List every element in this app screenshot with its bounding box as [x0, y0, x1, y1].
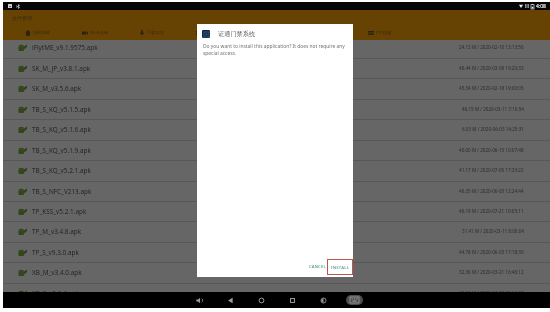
staticText: INSTALL [331, 264, 350, 270]
staticText: 41.17 M / 2020-07-05 17:33:22 [459, 167, 524, 173]
button[interactable]: INSTALL [328, 259, 353, 274]
staticText: TB_S_KQ_v5.1.6.apk [32, 125, 91, 134]
staticText: SD卡存储 [90, 30, 108, 36]
staticText: 证通门禁系统 [218, 30, 256, 38]
staticText: 31.41 M / 2020-03-11 8:00:04 [462, 228, 524, 234]
button[interactable]: TP_S_v9.3.0.apk [3, 242, 550, 262]
button[interactable]: Home [246, 292, 277, 308]
button[interactable]: iFlytME_v9.1.9575.apk [3, 40, 550, 57]
button[interactable]: SK_M_JP_v3.8.1.apk [3, 58, 550, 78]
button[interactable]: TP_KSS_v5.2.1.apk [3, 201, 550, 221]
staticText: TP_M_v3.4.8.apk [32, 227, 82, 236]
staticText: 24.13 M / 2020-02-10 13:13:56 [459, 44, 524, 50]
staticText: 46.44 M / 2020-03-09 19:20:33 [459, 65, 524, 71]
button[interactable]: Keyboard [339, 292, 370, 308]
button[interactable]: Back [215, 292, 246, 308]
button[interactable]: TB_S_KQ_v5.2.1.apk [3, 160, 550, 180]
staticText: 内部存储 [33, 30, 50, 35]
button[interactable]: TB_S_KQ_v5.1.6.apk [3, 119, 550, 139]
button[interactable]: TB_S_KQ_v5.1.9.apk [3, 140, 550, 160]
staticText: TB_S_KQ_v5.1.5.apk [32, 105, 91, 114]
button[interactable]: 内部存储 [9, 25, 66, 40]
staticText: 应用管理 [204, 30, 221, 35]
button[interactable]: CANCEL [306, 259, 329, 274]
staticText: 40.00 M / 2020-06-15 10:07:48 [459, 147, 524, 153]
button[interactable]: Volume [184, 292, 215, 308]
staticText: iFlytME_v9.1.9575.apk [32, 43, 98, 52]
button[interactable]: 图片视频 [237, 25, 294, 40]
staticText: 6.03 M / 2020-06-03 14:25:31 [462, 126, 524, 132]
button[interactable]: TB_S_NFC_V213.apk [3, 181, 550, 201]
staticText: XB_M_v3.4.0.apk [32, 268, 82, 277]
button[interactable]: XB_S_v5.1.4.apk [3, 283, 550, 292]
staticText: 46.19 M / 2020-07-21 10:05:11 [459, 208, 524, 214]
button[interactable]: Screenshot [308, 292, 339, 308]
staticText: 45.34 M / 2020-02-18 19:00:05 [459, 85, 524, 91]
staticText: Do you want to install this application?… [203, 43, 349, 56]
staticText: 下载管理 [147, 30, 164, 35]
staticText: FTP传输 [376, 30, 392, 36]
staticText: 文件管理 [12, 15, 32, 21]
button[interactable]: 下载管理 [123, 25, 180, 40]
staticText: 46.15 M / 2020-03-11 7:10:54 [462, 106, 524, 112]
staticText: TB_S_KQ_v5.1.9.apk [32, 146, 91, 155]
button[interactable]: 应用管理 [180, 25, 237, 40]
button[interactable]: FTP传输 [351, 25, 408, 40]
button[interactable]: SK_M_v3.5.6.apk [3, 78, 550, 98]
button[interactable]: TB_S_KQ_v5.1.5.apk [3, 99, 550, 119]
staticText: 32.36 M / 2020-03-21 16:46:12 [459, 269, 524, 275]
button[interactable]: SD卡存储 [66, 25, 123, 40]
staticText: 46.35 M / 2020-06-03 12:24:44 [459, 188, 524, 194]
button[interactable]: XB_M_v3.4.0.apk [3, 262, 550, 282]
button[interactable]: Recents [277, 292, 308, 308]
staticText: 44.78 M / 2020-06-03 17:18:30 [459, 249, 524, 255]
staticText: TB_S_KQ_v5.2.1.apk [32, 166, 91, 175]
staticText: 48.12 M / 2020-04-08 08:14:07 [459, 290, 524, 292]
staticText: XB_S_v5.1.4.apk [32, 289, 80, 292]
button[interactable]: TP_M_v3.4.8.apk [3, 221, 550, 241]
staticText: TP_S_v9.3.0.apk [32, 248, 79, 257]
staticText: CANCEL [309, 264, 326, 270]
staticText: 4:08 [536, 3, 546, 10]
staticText: SK_M_JP_v3.8.1.apk [32, 64, 91, 73]
staticText: TB_S_NFC_V213.apk [32, 187, 92, 196]
staticText: TP_KSS_v5.2.1.apk [32, 207, 87, 216]
staticText: SK_M_v3.5.6.apk [32, 84, 82, 93]
